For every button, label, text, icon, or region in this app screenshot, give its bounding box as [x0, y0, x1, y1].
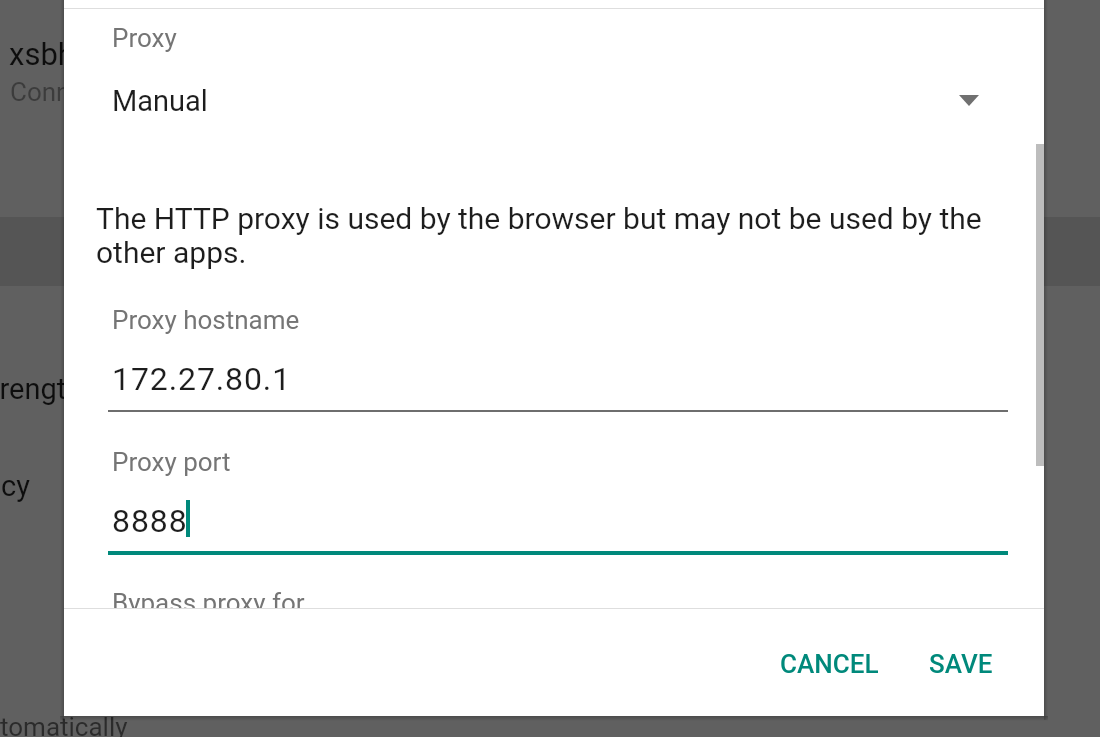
staticText: Proxy port [112, 447, 231, 477]
staticText: Proxy [112, 23, 177, 53]
staticText: Manual [112, 84, 208, 118]
staticText: Proxy hostname [112, 305, 300, 335]
staticText: CANCEL [780, 649, 879, 679]
staticText: trength [0, 372, 83, 406]
button[interactable] [108, 352, 1008, 412]
staticText: SAVE [929, 649, 993, 679]
button[interactable] [108, 494, 1008, 554]
staticText: xsbh [9, 36, 75, 72]
staticText: Conn [10, 77, 71, 107]
staticText: 172.27.80.1 [112, 360, 292, 398]
staticText: cy [1, 469, 30, 503]
staticText: 8888 [112, 502, 188, 540]
staticText: Bypass proxy for [112, 588, 305, 618]
button[interactable]: SAVE [911, 634, 1011, 694]
button[interactable]: Open proxy type dropdown [945, 80, 993, 122]
staticText: tomatically [0, 712, 128, 737]
button[interactable]: CANCEL [762, 634, 897, 694]
button[interactable] [96, 14, 1008, 130]
staticText: The HTTP proxy is used by the browser bu… [96, 201, 996, 270]
